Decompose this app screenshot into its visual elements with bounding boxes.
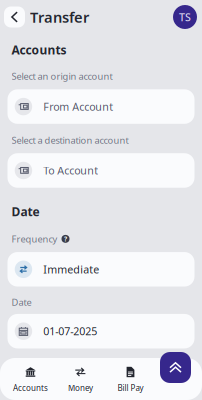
staticText: Money bbox=[68, 382, 93, 393]
staticText: Frequency bbox=[11, 233, 57, 245]
staticText: Accounts bbox=[13, 382, 48, 393]
staticText: 01-07-2025 bbox=[43, 324, 97, 338]
button[interactable]: Bill Pay bbox=[105, 365, 155, 395]
button[interactable]: Back bbox=[4, 6, 25, 27]
staticText: Select a destination account bbox=[11, 134, 128, 146]
button[interactable]: Immediate bbox=[7, 252, 194, 287]
staticText: Date bbox=[11, 296, 31, 308]
staticText: ? bbox=[64, 234, 67, 243]
staticText: To Account bbox=[43, 163, 98, 178]
button[interactable]: Continue transfer bbox=[160, 352, 191, 383]
staticText: Select an origin account bbox=[11, 70, 112, 82]
staticText: Accounts bbox=[11, 42, 66, 58]
staticText: Immediate bbox=[43, 262, 99, 276]
button[interactable]: Accounts bbox=[5, 365, 55, 395]
button[interactable]: From Account bbox=[7, 89, 194, 124]
button[interactable]: To Account bbox=[7, 153, 194, 188]
button[interactable]: Account profile bbox=[173, 5, 197, 29]
staticText: TS bbox=[179, 10, 191, 24]
button[interactable]: 01-07-2025 bbox=[7, 314, 194, 348]
staticText: Date bbox=[11, 204, 39, 220]
button[interactable]: Money bbox=[55, 365, 105, 395]
staticText: Bill Pay bbox=[117, 382, 143, 393]
staticText: From Account bbox=[43, 99, 113, 114]
staticText: Transfer bbox=[30, 7, 89, 27]
